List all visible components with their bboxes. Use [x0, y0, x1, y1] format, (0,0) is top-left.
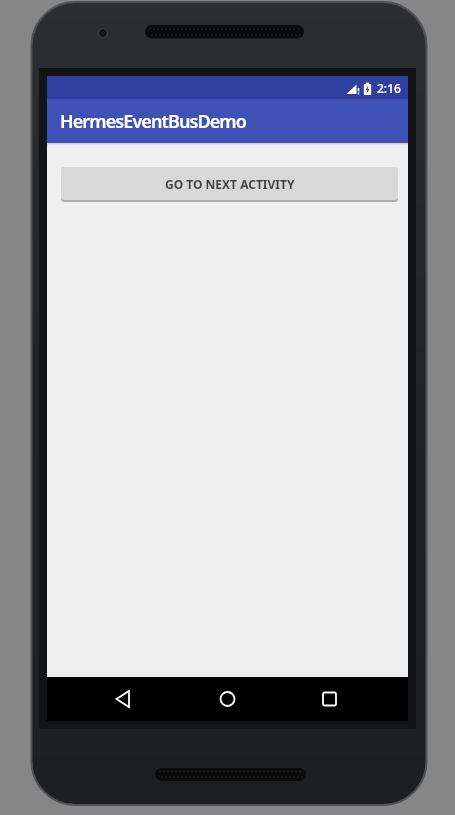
staticText: GO TO NEXT ACTIVITY	[165, 176, 295, 192]
staticText: HermesEventBusDemo	[60, 109, 246, 134]
staticText: 2:16	[377, 80, 401, 96]
